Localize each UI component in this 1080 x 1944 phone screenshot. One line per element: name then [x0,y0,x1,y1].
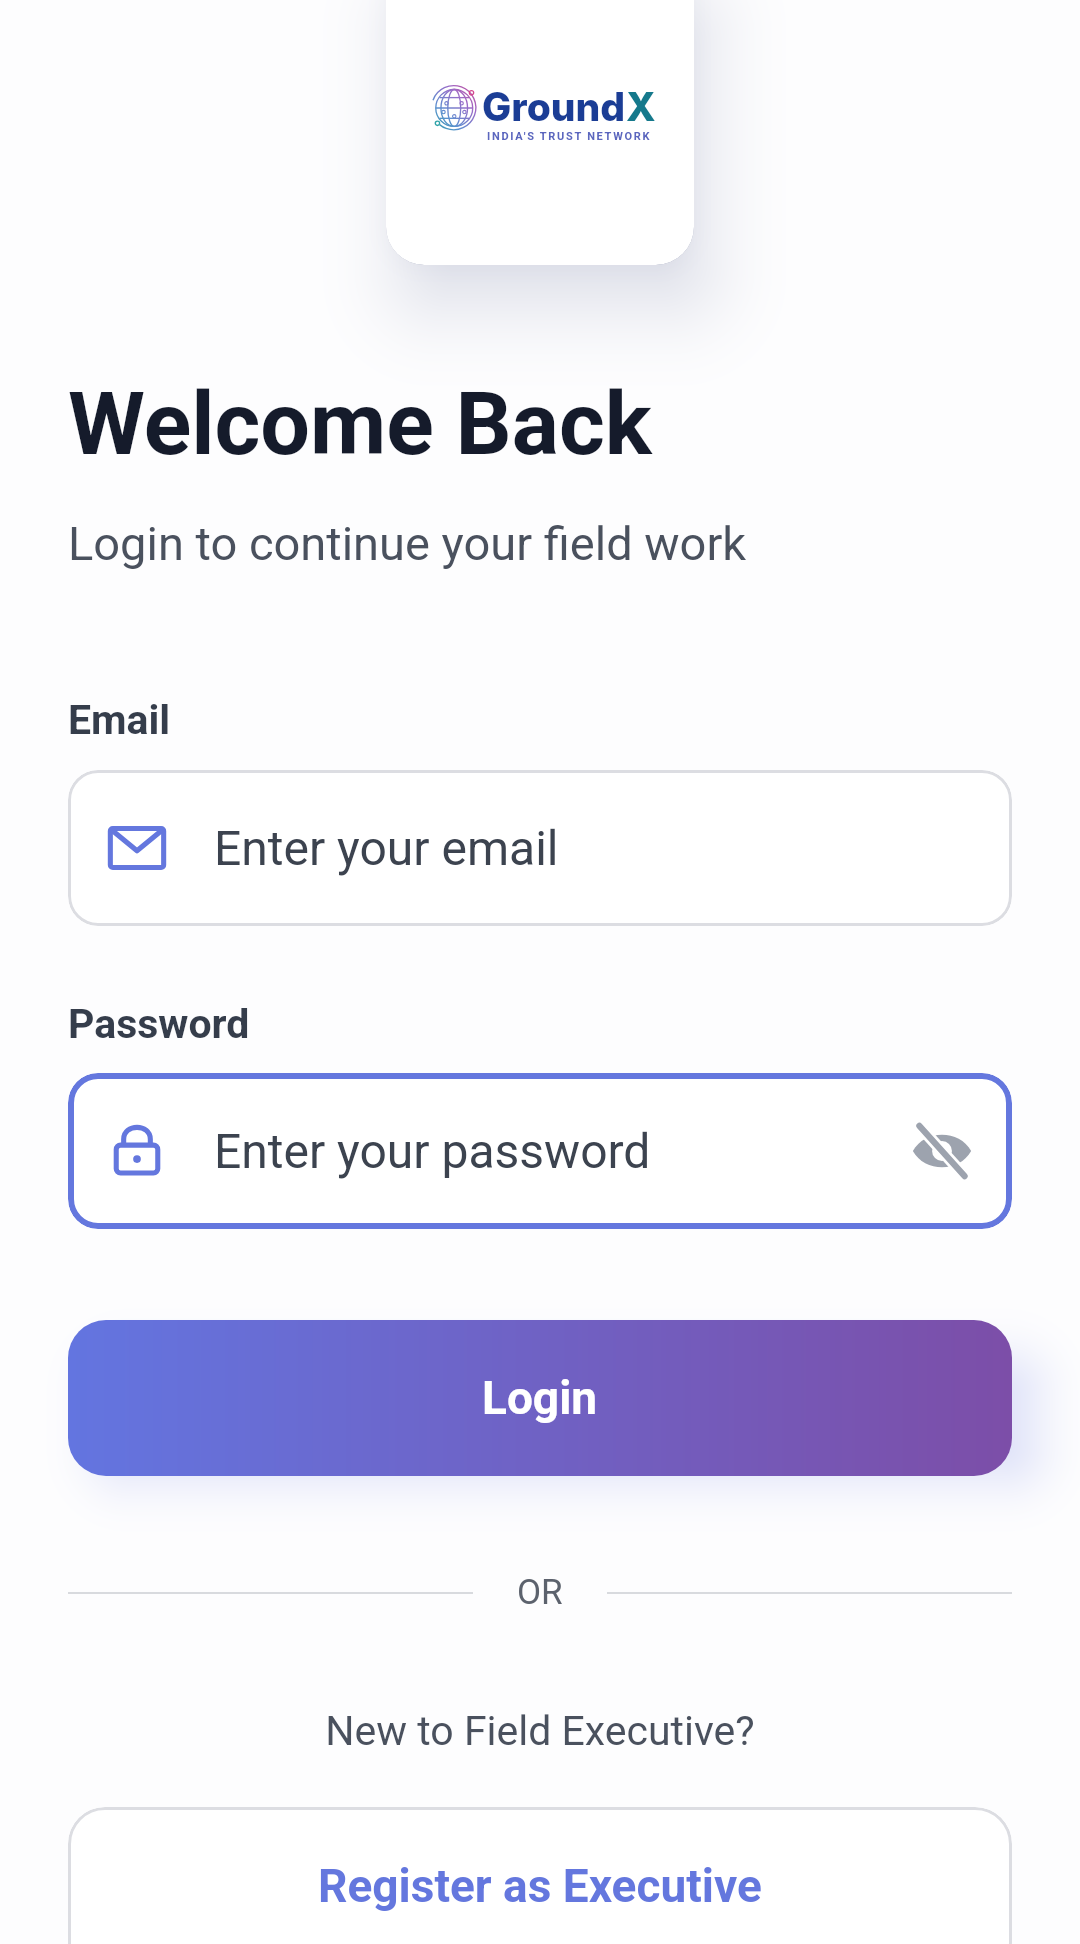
staticText: X [626,83,656,130]
staticText: Login [482,1371,598,1425]
button[interactable]: Show password [906,1115,978,1187]
staticText: Password [68,1000,250,1048]
staticText: Enter your password [214,1123,651,1179]
staticText: Enter your email [214,820,559,876]
button[interactable]: Enter your email [68,770,1012,926]
button[interactable]: Enter your password [68,1073,1012,1229]
staticText: INDIA'S TRUST NETWORK [487,130,652,143]
staticText: Welcome Back [68,372,652,475]
staticText: New to Field Executive? [68,1707,1012,1755]
staticText: Login to continue your field work [68,516,747,571]
button[interactable]: Login [68,1320,1012,1476]
staticText: Email [68,696,171,744]
staticText: OR [517,1572,563,1613]
staticText: Register as Executive [318,1859,762,1913]
button[interactable]: Register as Executive [68,1807,1012,1944]
staticText: Ground [482,83,626,130]
